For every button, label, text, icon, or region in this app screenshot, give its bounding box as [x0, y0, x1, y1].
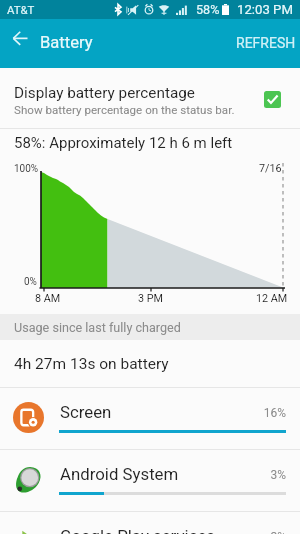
staticText: Battery — [40, 33, 93, 52]
button[interactable]: Display battery percentage — [0, 68, 300, 128]
button[interactable]: REFRESH — [228, 19, 300, 68]
staticText: Usage since last fully charged — [14, 320, 181, 335]
button[interactable]: Android System — [0, 450, 300, 511]
staticText: 100% — [14, 163, 39, 175]
staticText: Display battery percentage — [14, 84, 195, 102]
staticText: Show battery percentage on the status ba… — [14, 103, 235, 117]
staticText: REFRESH — [236, 35, 296, 51]
staticText: 12 AM — [256, 292, 288, 305]
button[interactable]: Back — [7, 25, 34, 52]
staticText: 3 PM — [138, 292, 163, 305]
staticText: Google Play services — [60, 526, 216, 534]
staticText: 3% — [230, 468, 286, 482]
staticText: 58% — [196, 2, 220, 17]
staticText: 4h 27m 13s on battery — [14, 355, 169, 373]
button[interactable]: Google Play services — [0, 512, 300, 534]
staticText: 2% — [230, 530, 286, 534]
staticText: AT&T — [7, 3, 35, 16]
staticText: 7/16 — [259, 162, 282, 175]
staticText: 16% — [230, 406, 286, 420]
staticText: 0% — [24, 276, 37, 288]
staticText: Android System — [60, 464, 179, 484]
staticText: 58%: Approximately 12 h 6 m left — [14, 134, 233, 152]
button[interactable]: Screen — [0, 388, 300, 449]
staticText: Screen — [60, 402, 112, 422]
staticText: 8 AM — [35, 292, 61, 305]
staticText: 12:03 PM — [237, 2, 293, 17]
